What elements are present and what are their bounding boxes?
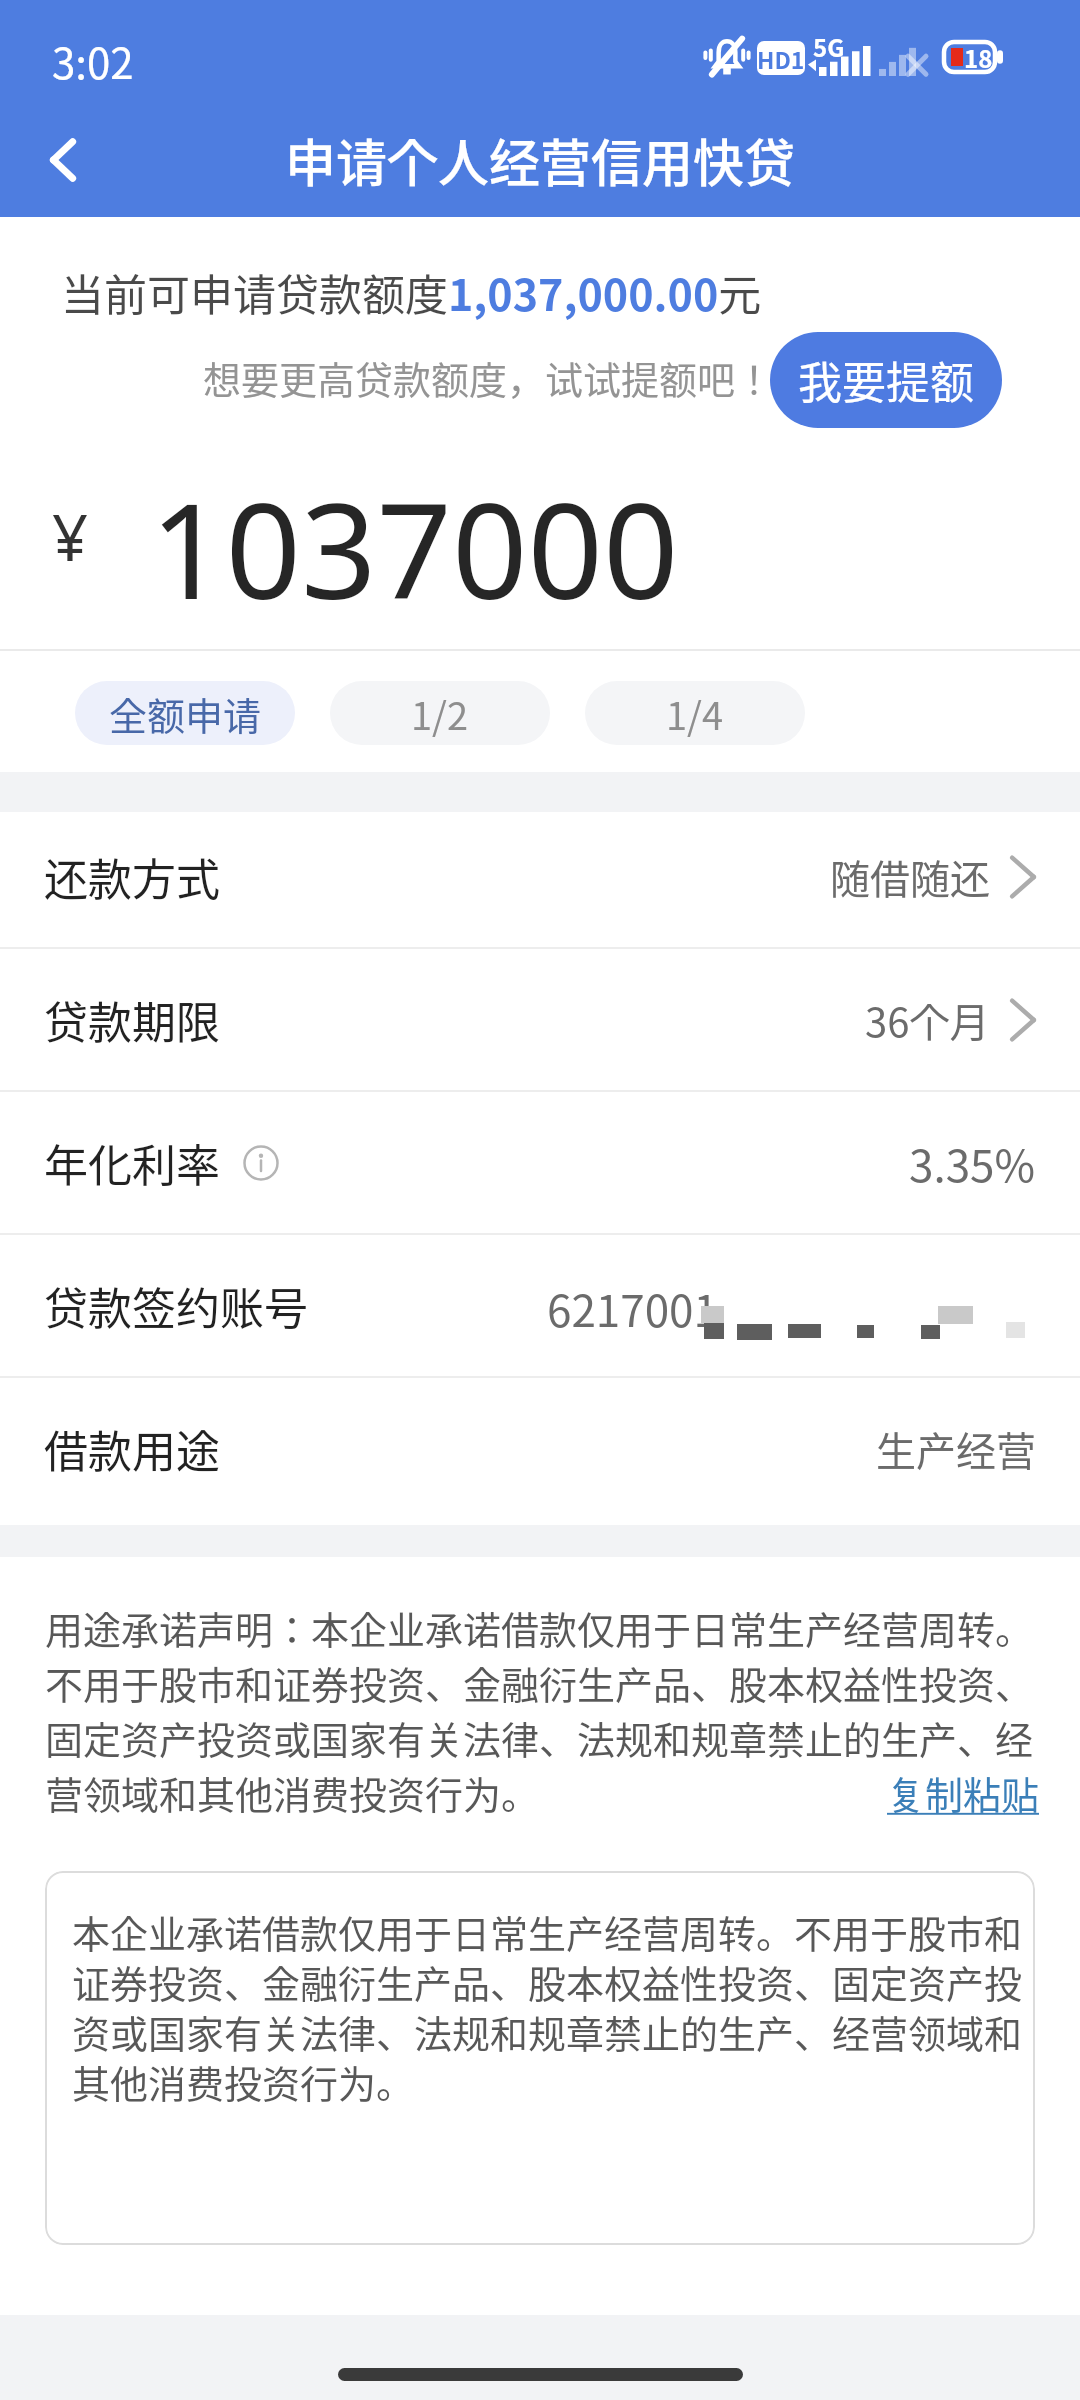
button[interactable]: 全额申请 [75,681,295,745]
staticText: 全额申请 [109,686,262,741]
staticText: 3:02 [52,30,134,91]
button[interactable]: 年化利率 [0,1092,1080,1233]
button[interactable]: 还款方式 [0,806,1080,947]
button[interactable]: Back [28,124,100,196]
staticText: 借款用途 [44,1417,220,1481]
button[interactable]: 贷款期限 [0,949,1080,1090]
staticText: 贷款签约账号 [44,1274,308,1338]
staticText: 我要提额 [798,348,974,412]
button[interactable]: 1/2 [330,681,550,745]
staticText: 还款方式 [44,845,220,909]
staticText: 1/4 [666,686,724,741]
button[interactable]: 贷款签约账号 [0,1235,1080,1376]
staticText: 36个月 [865,991,990,1049]
staticText: 当前可申请贷款额度1,037,000.00元 [61,261,762,323]
staticText: 生产经营 [876,1420,1036,1478]
button[interactable]: 1/4 [585,681,805,745]
staticText: 年化利率 [44,1131,220,1195]
button[interactable]: 借款用途 [0,1378,1080,1519]
staticText: 随借随还 [830,848,990,906]
staticText: HD1 [757,42,805,75]
staticText: 贷款期限 [44,988,220,1052]
staticText: 申请个人经营信用快贷 [0,123,1080,197]
staticText: 本企业承诺借款仅用于日常生产经营周转。不用于股市和 证券投资、金融衍生产品、股本… [72,1904,1023,2109]
staticText: 18 [964,40,993,74]
staticText: 1037000 [150,458,679,638]
button[interactable]: 我要提额 [770,332,1002,428]
staticText: 5G [813,29,845,64]
staticText: 6217001 [547,1276,718,1336]
button[interactable]: 复制粘贴 [887,1765,1040,1820]
staticText: 想要更高贷款额度，试试提额吧！ [203,350,774,405]
staticText: 3.35% [909,1131,1036,1195]
staticText: 复制粘贴 [887,1765,1040,1820]
staticText: 用途承诺声明：本企业承诺借款仅用于日常生产经营周转。 不用于股市和证券投资、金融… [45,1600,1034,1820]
staticText: 1/2 [411,686,469,741]
staticText: ¥ [52,494,89,580]
